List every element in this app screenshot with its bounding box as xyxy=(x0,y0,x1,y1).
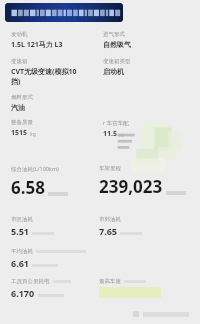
button[interactable]: 燃料形式 xyxy=(11,94,189,112)
staticText: 综合油耗(L/100km) xyxy=(11,165,59,173)
button[interactable]: 发动机 xyxy=(11,31,189,50)
staticText: 7.65 xyxy=(99,225,117,237)
staticText: 239,023 xyxy=(99,175,163,198)
staticText: CVT无级变速(模拟10 挡) xyxy=(11,67,77,87)
staticText: 1.5L 121马力 L3 xyxy=(11,40,63,50)
staticText: 发动机 xyxy=(11,31,28,38)
staticText: 市郊油耗 xyxy=(99,216,121,223)
staticText: 6.58 xyxy=(11,176,45,199)
staticText: 变速箱 xyxy=(11,58,28,65)
staticText: 自然吸气 xyxy=(103,40,131,49)
staticText: г 车官车配 xyxy=(103,119,129,127)
staticText: 6.170 xyxy=(11,287,35,299)
staticText: 整备质量 xyxy=(11,119,33,126)
button[interactable]: 变速箱 xyxy=(11,58,189,87)
staticText: 最高车速 xyxy=(99,278,121,285)
staticText: 车架里程 xyxy=(99,165,121,172)
staticText: 燃料形式 xyxy=(11,94,33,101)
staticText: m xyxy=(119,132,124,139)
button[interactable]: 综合油耗(L/100km) xyxy=(11,165,99,199)
button[interactable]: 市郊油耗 xyxy=(99,216,189,237)
button[interactable]: 车型标题横幅 xyxy=(5,3,123,22)
staticText: kg xyxy=(30,131,36,138)
staticText: 1515 xyxy=(11,128,28,138)
staticText: 6.61 xyxy=(11,257,29,269)
staticText: 工况百公里耗电 xyxy=(11,278,50,285)
staticText: 平均油耗 xyxy=(11,248,33,255)
button[interactable]: 车架里程 xyxy=(99,165,189,198)
button[interactable]: 整备质量 xyxy=(11,119,189,139)
staticText: 11.5 xyxy=(103,129,117,139)
staticText: 市区油耗 xyxy=(11,216,33,223)
staticText: 汽油 xyxy=(11,103,25,112)
button[interactable]: 市区油耗 xyxy=(11,216,99,237)
staticText: 进气形式 xyxy=(103,31,125,38)
staticText: 变速箱类型 xyxy=(103,58,131,65)
staticText: 启动机 xyxy=(103,67,124,76)
staticText: 5.51 xyxy=(11,225,29,237)
